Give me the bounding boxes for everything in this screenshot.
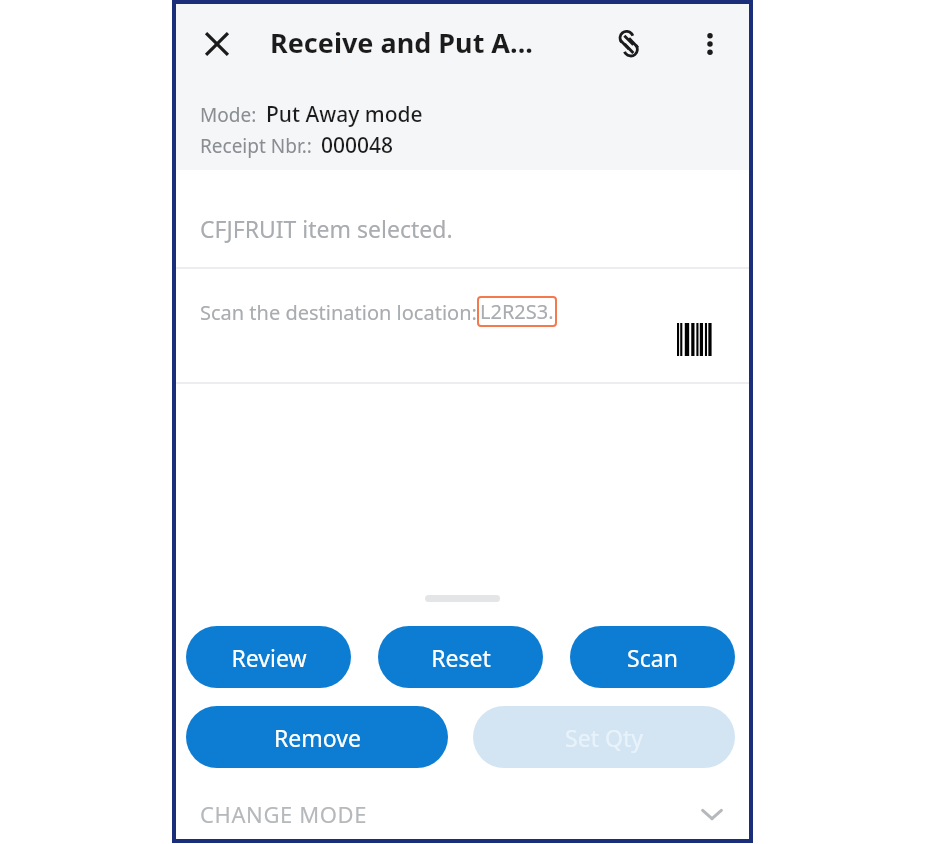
button[interactable]: Scan [570, 626, 735, 688]
staticText: L2R2S3. [480, 298, 554, 325]
button[interactable]: Attachment [601, 16, 657, 72]
button[interactable]: Set Qty [473, 706, 735, 768]
button[interactable]: CHANGE MODE [176, 790, 749, 838]
button[interactable]: Remove [186, 706, 448, 768]
staticText: Scan [627, 642, 678, 673]
button[interactable]: Close [189, 16, 245, 72]
button[interactable]: More options [682, 16, 738, 72]
staticText: Put Away mode [266, 100, 423, 129]
staticText: Set Qty [565, 722, 643, 753]
staticText: 000048 [321, 131, 394, 160]
staticText: Reset [431, 642, 491, 673]
button[interactable]: CFJFRUIT item selected. [200, 213, 453, 244]
button[interactable]: Reset [378, 626, 543, 688]
staticText: Receive and Put A... [270, 24, 533, 61]
button[interactable]: Scan barcode [666, 309, 726, 369]
staticText: CHANGE MODE [200, 799, 367, 829]
staticText: Scan the destination location: [200, 299, 477, 326]
staticText: Mode: [200, 102, 257, 128]
button[interactable]: Review [186, 626, 351, 688]
staticText: Review [231, 642, 307, 673]
staticText: Remove [274, 722, 361, 753]
staticText: Receipt Nbr.: [200, 133, 312, 159]
